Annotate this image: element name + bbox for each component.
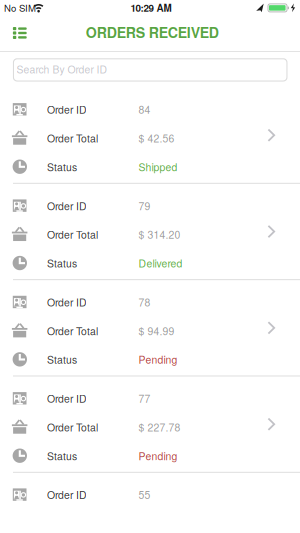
button[interactable]: Search By Order ID bbox=[13, 58, 287, 81]
staticText: 77 bbox=[138, 391, 150, 406]
staticText: ORDERS RECEIVED bbox=[86, 22, 219, 42]
staticText: No SIM bbox=[4, 1, 36, 14]
staticText: Order ID bbox=[47, 294, 87, 309]
staticText: Status bbox=[47, 159, 77, 174]
staticText: Status bbox=[47, 352, 77, 367]
staticText: Order ID bbox=[47, 102, 87, 117]
staticText: Pending bbox=[138, 448, 177, 463]
staticText: 55 bbox=[138, 487, 150, 502]
staticText: Search By Order ID bbox=[16, 61, 107, 76]
staticText: 78 bbox=[138, 294, 150, 309]
staticText: Status bbox=[47, 256, 77, 270]
staticText: 79 bbox=[138, 198, 150, 213]
staticText: Order ID bbox=[47, 391, 87, 406]
staticText: $ 227.78 bbox=[138, 420, 180, 434]
button[interactable] bbox=[13, 27, 27, 39]
staticText: Status bbox=[47, 448, 77, 463]
staticText: $ 42.56 bbox=[138, 131, 174, 145]
staticText: Pending bbox=[138, 352, 177, 367]
staticText: $ 94.99 bbox=[138, 323, 174, 338]
staticText: Order ID bbox=[47, 198, 87, 213]
button[interactable]: Order ID bbox=[0, 87, 300, 183]
staticText: Order ID bbox=[47, 487, 87, 502]
button[interactable]: Order ID bbox=[0, 376, 300, 472]
staticText: $ 314.20 bbox=[138, 227, 180, 242]
staticText: Order Total bbox=[47, 131, 98, 145]
staticText: Shipped bbox=[138, 159, 177, 174]
button[interactable]: Order ID bbox=[0, 472, 300, 533]
staticText: 84 bbox=[138, 102, 150, 117]
staticText: Order Total bbox=[47, 323, 98, 338]
staticText: Delivered bbox=[138, 256, 182, 270]
staticText: Order Total bbox=[47, 227, 98, 242]
staticText: Order Total bbox=[47, 420, 98, 434]
staticText: 10:29 AM bbox=[130, 1, 171, 15]
button[interactable]: Order ID bbox=[0, 183, 300, 280]
button[interactable]: Order ID bbox=[0, 280, 300, 376]
